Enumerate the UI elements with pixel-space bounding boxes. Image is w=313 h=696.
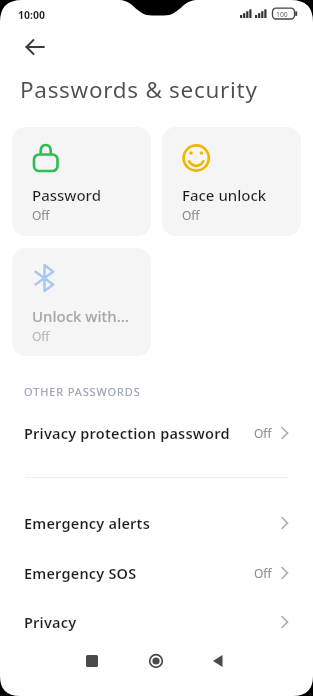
button[interactable] <box>66 639 117 683</box>
staticText: Password <box>32 185 101 205</box>
staticText: Emergency alerts <box>24 513 151 533</box>
button[interactable] <box>16 30 54 64</box>
staticText: Off <box>182 207 200 223</box>
staticText: Unlock with… <box>32 306 129 326</box>
staticText: Privacy <box>24 612 77 632</box>
button[interactable]: Privacy protection password <box>0 409 313 457</box>
button[interactable]: Password <box>12 127 151 236</box>
staticText: Privacy protection password <box>24 423 230 443</box>
button[interactable]: Face unlock <box>162 127 301 236</box>
staticText: Off <box>32 207 50 223</box>
button[interactable]: Emergency alerts <box>0 499 313 547</box>
staticText: Off <box>32 328 50 344</box>
button[interactable]: Privacy <box>0 598 313 646</box>
button[interactable] <box>130 639 182 683</box>
staticText: OTHER PASSWORDS <box>24 384 141 399</box>
staticText: 10:00 <box>18 8 45 22</box>
button[interactable]: Emergency SOS <box>0 549 313 597</box>
staticText: Off <box>254 565 272 581</box>
staticText: Emergency SOS <box>24 563 137 583</box>
staticText: Face unlock <box>182 185 267 205</box>
staticText: 100 <box>276 10 288 19</box>
button[interactable]: Unlock with… <box>12 248 151 356</box>
staticText: Off <box>254 425 272 441</box>
staticText: Passwords & security <box>20 74 258 105</box>
button[interactable] <box>192 639 243 683</box>
